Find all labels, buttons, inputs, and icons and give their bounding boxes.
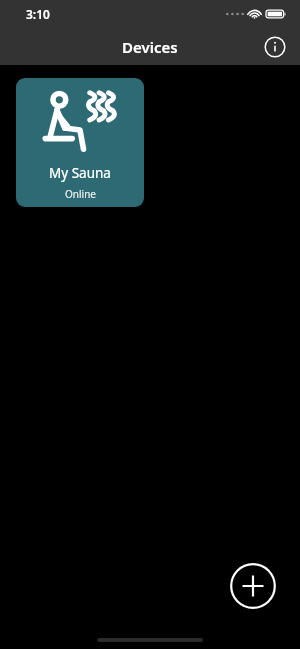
button[interactable]: Info (262, 34, 288, 60)
staticText: Devices (122, 37, 178, 57)
staticText: Online (65, 187, 96, 201)
button[interactable]: My Sauna (16, 78, 144, 207)
button[interactable]: Add device (229, 562, 277, 610)
staticText: My Sauna (49, 164, 111, 182)
staticText: 3:10 (26, 6, 50, 22)
